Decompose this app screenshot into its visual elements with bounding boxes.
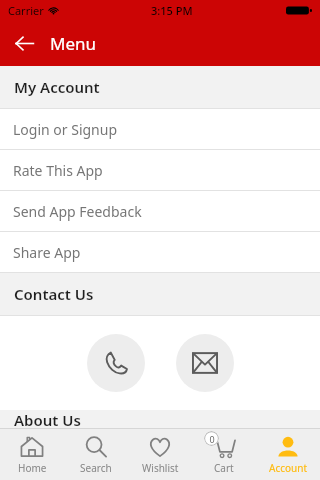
button[interactable]: Account	[256, 429, 320, 480]
button[interactable]: Back	[10, 29, 38, 57]
button[interactable]: Search	[64, 429, 128, 480]
staticText: Search	[80, 461, 112, 475]
staticText: Rate This App	[13, 161, 103, 180]
button[interactable]: Email us	[176, 334, 234, 392]
staticText: 0	[209, 433, 215, 445]
button[interactable]: Call us	[87, 334, 145, 392]
staticText: 3:15 PM	[151, 3, 193, 18]
button[interactable]: 0	[192, 429, 256, 480]
staticText: Cart	[214, 461, 234, 475]
staticText: Carrier	[8, 3, 44, 18]
staticText: Contact Us	[14, 284, 94, 304]
staticText: Menu	[50, 32, 97, 55]
button[interactable]: Rate This App	[0, 150, 320, 191]
staticText: Account	[269, 461, 308, 475]
staticText: About Us	[14, 410, 81, 428]
staticText: Share App	[13, 243, 81, 262]
button[interactable]: Send App Feedback	[0, 191, 320, 232]
button[interactable]: Login or Signup	[0, 109, 320, 150]
button[interactable]: Share App	[0, 232, 320, 273]
button[interactable]: Wishlist	[128, 429, 192, 480]
staticText: Send App Feedback	[13, 202, 142, 221]
staticText: Home	[18, 461, 47, 475]
button[interactable]: Back	[0, 20, 320, 66]
staticText: Wishlist	[142, 461, 179, 475]
button[interactable]: Home	[0, 429, 64, 480]
staticText: Login or Signup	[13, 120, 118, 139]
staticText: My Account	[14, 77, 100, 97]
